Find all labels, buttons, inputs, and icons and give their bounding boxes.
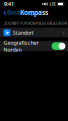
staticText: Geografischer Norden [3, 39, 38, 53]
staticText: ZUGRIFF FÜR KOMPASS ERLAUBEN [4, 20, 67, 26]
staticText: Einstellungen [7, 9, 39, 16]
button[interactable]: Geografischer Norden [0, 41, 68, 51]
staticText: LTE [49, 1, 55, 7]
button[interactable]: ‹ [1, 6, 41, 19]
staticText: › [62, 28, 64, 37]
staticText: Standort [13, 29, 34, 36]
button[interactable]: ➤ [0, 28, 68, 38]
staticText: Kompass [20, 8, 48, 17]
staticText: 9:41 [4, 0, 14, 8]
staticText: ➤ [5, 30, 9, 36]
staticText: ‹ [3, 7, 6, 18]
